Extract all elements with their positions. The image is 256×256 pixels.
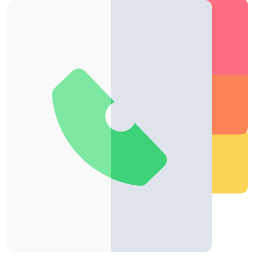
button[interactable]: Phone book contacts icon xyxy=(0,0,256,256)
